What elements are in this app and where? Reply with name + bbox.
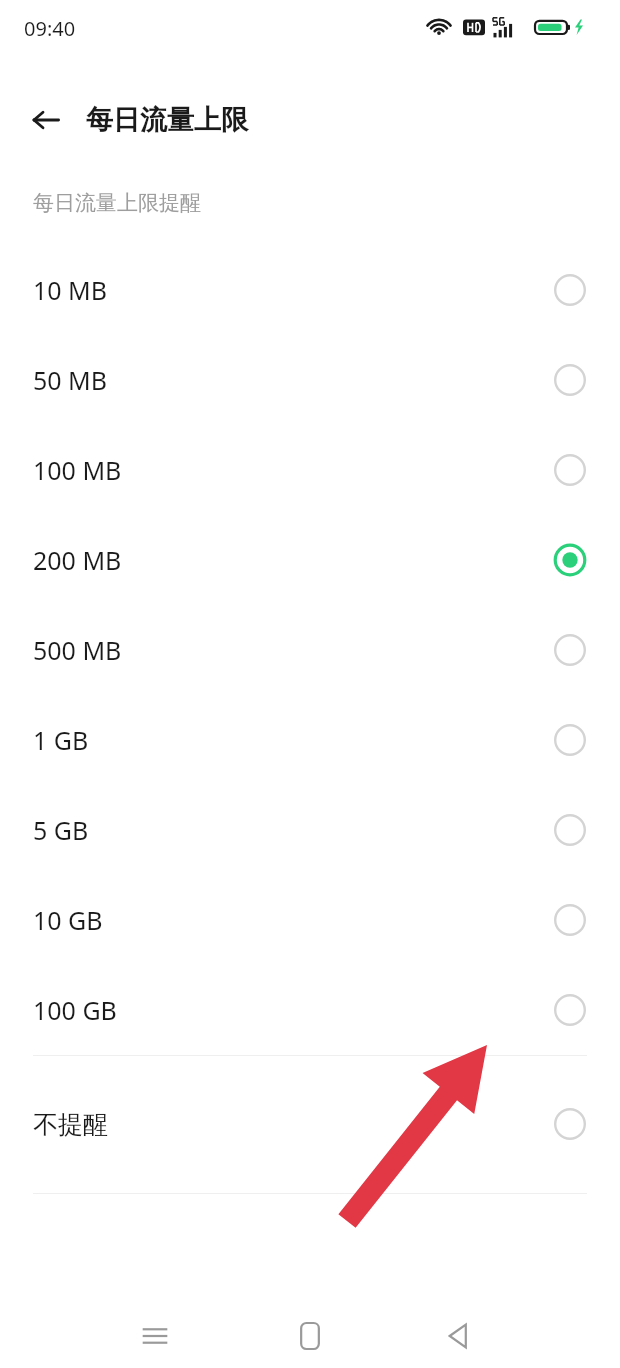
staticText: 50 MB (33, 363, 553, 397)
staticText: 每日流量上限提醒 (33, 190, 201, 216)
button[interactable]: 1 GB (0, 695, 620, 785)
button[interactable]: 100 GB (0, 965, 620, 1055)
button[interactable]: 10 MB (0, 245, 620, 335)
button[interactable]: 50 MB (0, 335, 620, 425)
button[interactable]: Home (260, 1304, 360, 1368)
staticText: 100 MB (33, 453, 553, 487)
staticText: 100 GB (33, 993, 553, 1027)
staticText: 1 GB (33, 723, 553, 757)
button[interactable]: 5 GB (0, 785, 620, 875)
staticText: 200 MB (33, 543, 553, 577)
staticText: 10 MB (33, 273, 553, 307)
button[interactable]: 不提醒 (0, 1082, 620, 1166)
staticText: 不提醒 (33, 1109, 553, 1140)
button[interactable]: Back (408, 1304, 508, 1368)
staticText: 500 MB (33, 633, 553, 667)
button[interactable]: Recents (105, 1304, 205, 1368)
button[interactable]: 100 MB (0, 425, 620, 515)
button[interactable]: 500 MB (0, 605, 620, 695)
staticText: 每日流量上限 (86, 103, 248, 137)
button[interactable]: Back (22, 96, 70, 144)
button[interactable]: 200 MB (0, 515, 620, 605)
staticText: 09:40 (24, 15, 76, 42)
staticText: 10 GB (33, 903, 553, 937)
button[interactable]: 10 GB (0, 875, 620, 965)
staticText: 5 GB (33, 813, 553, 847)
